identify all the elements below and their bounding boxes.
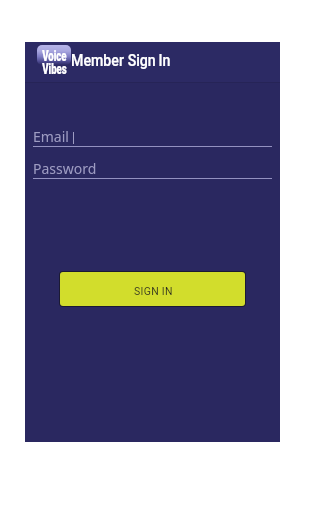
button[interactable]: Password <box>33 159 272 179</box>
staticText: Member <box>71 51 124 70</box>
button[interactable]: Email <box>33 127 272 147</box>
staticText: Email <box>33 127 69 146</box>
staticText: Sign <box>128 51 156 70</box>
staticText: Password <box>33 159 97 178</box>
staticText: SIGN IN <box>134 285 173 297</box>
button[interactable]: SIGN IN <box>60 272 245 306</box>
other: Voice Vibes logo <box>36 45 71 81</box>
staticText: Voice <box>42 47 67 64</box>
staticText: In <box>159 51 171 70</box>
staticText: Vibes <box>42 60 67 77</box>
